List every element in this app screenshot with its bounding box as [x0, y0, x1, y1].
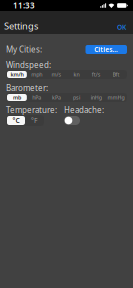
button[interactable]: Cities…	[85, 45, 127, 54]
staticText: 11:33	[13, 0, 35, 11]
staticText: kPa	[52, 94, 61, 101]
staticText: Settings	[4, 20, 38, 32]
staticText: mph	[31, 71, 42, 78]
staticText: km/h	[10, 71, 23, 78]
staticText: Cities…	[94, 45, 118, 54]
button[interactable]: kPa	[47, 94, 66, 101]
button[interactable]: inHg	[86, 94, 106, 101]
staticText: kn	[73, 71, 79, 78]
button[interactable]: mb	[7, 94, 27, 101]
button[interactable]: °F	[25, 116, 43, 125]
button[interactable]: OK	[113, 23, 130, 32]
staticText: mmHg	[108, 94, 125, 101]
staticText: Temperature:	[6, 105, 57, 115]
staticText: Headache:	[64, 105, 104, 115]
staticText: psi	[73, 94, 80, 101]
button[interactable]: psi	[66, 94, 86, 101]
button[interactable]: hPa	[27, 94, 47, 101]
button[interactable]: Bft	[106, 71, 126, 78]
button[interactable]: km/h	[7, 71, 27, 78]
button[interactable]: m/s	[47, 71, 66, 78]
staticText: Windspeed:	[6, 60, 51, 70]
staticText: °C	[12, 116, 19, 125]
staticText: inHg	[91, 94, 102, 101]
staticText: My Cities:	[6, 44, 42, 55]
staticText: OK	[117, 23, 126, 31]
button[interactable]: mmHg	[106, 94, 126, 101]
button[interactable]: Headache	[64, 116, 80, 125]
staticText: Barometer:	[6, 83, 48, 93]
button[interactable]: mph	[27, 71, 47, 78]
staticText: mb	[13, 94, 21, 101]
staticText: °F	[31, 116, 37, 125]
button[interactable]: kn	[66, 71, 86, 78]
staticText: hPa	[32, 94, 41, 101]
staticText: m/s	[52, 71, 62, 78]
staticText: Bft	[113, 71, 120, 78]
staticText: ft/s	[92, 71, 101, 78]
button[interactable]: ft/s	[86, 71, 106, 78]
button[interactable]: °C	[7, 116, 25, 125]
